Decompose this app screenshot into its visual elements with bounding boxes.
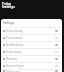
button[interactable]: Turn off Notifications <box>55 44 58 46</box>
button[interactable]: Data usage <box>1 49 62 55</box>
staticText: Account sync <box>6 64 24 68</box>
button[interactable]: Turn on Account sync <box>55 65 58 67</box>
button[interactable]: Turn off Sharing <box>55 58 58 60</box>
button[interactable]: Sharing <box>1 56 62 62</box>
button[interactable]: Turn off Data privacy <box>55 30 58 32</box>
button[interactable]: Turn off About app <box>55 70 58 72</box>
staticText: Permissions <box>6 36 23 40</box>
button[interactable]: Turn on Data usage <box>55 51 58 53</box>
button[interactable]: Account sync <box>1 63 62 69</box>
button[interactable]: Permissions <box>1 35 62 41</box>
button[interactable]: Notifications <box>1 42 62 48</box>
staticText: Notifications <box>6 43 24 47</box>
staticText: Sharing <box>6 57 17 61</box>
staticText: Data privacy <box>6 29 23 33</box>
staticText: Settings <box>2 5 15 9</box>
staticText: Settings <box>3 21 14 25</box>
staticText: Data usage <box>6 50 22 54</box>
button[interactable]: Data privacy <box>1 28 62 34</box>
staticText: About app <box>6 70 21 72</box>
button[interactable]: About app <box>1 70 62 72</box>
staticText: Policy <box>2 2 12 6</box>
button[interactable]: Turn on Permissions <box>55 37 58 39</box>
